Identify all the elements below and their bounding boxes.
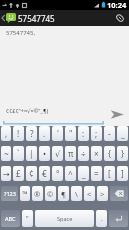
staticText: ;: [95, 128, 98, 139]
button[interactable]: _: [117, 126, 128, 141]
staticText: `: [17, 148, 20, 159]
staticText: ~: [4, 148, 9, 159]
staticText: _: [82, 168, 86, 179]
button[interactable]: Navigate up: [0, 10, 16, 26]
button[interactable]: ~: [1, 146, 11, 161]
button[interactable]: |: [26, 146, 37, 161]
staticText: \: [75, 189, 78, 199]
button[interactable]: •: [39, 146, 50, 161]
button[interactable]: Enter: [109, 210, 128, 227]
staticText: :: [82, 128, 85, 139]
staticText: <: [87, 189, 92, 199]
button[interactable]: ®: [32, 186, 43, 201]
button[interactable]: ™: [20, 186, 30, 201]
staticText: !: [17, 128, 20, 139]
button[interactable]: ": [65, 126, 76, 141]
staticText: 10:24: [107, 0, 127, 10]
staticText: ¶: [61, 189, 66, 199]
button[interactable]: →: [1, 166, 11, 181]
staticText: [: [108, 168, 111, 179]
button[interactable]: .: [96, 210, 107, 227]
staticText: ": [26, 214, 29, 223]
staticText: _: [121, 128, 125, 139]
button[interactable]: ×: [91, 146, 102, 161]
button[interactable]: {: [104, 146, 115, 161]
button[interactable]: .: [39, 126, 50, 141]
button[interactable]: €: [39, 166, 50, 181]
staticText: ÷: [81, 148, 86, 159]
button[interactable]: Backspace: [110, 186, 128, 201]
button[interactable]: ABC: [1, 210, 20, 227]
button[interactable]: ÷: [78, 146, 89, 161]
staticText: ©: [47, 189, 54, 199]
staticText: =: [94, 168, 99, 179]
staticText: .: [43, 128, 46, 139]
staticText: Space: [57, 215, 73, 222]
button[interactable]: Space: [35, 210, 94, 227]
staticText: ": [69, 128, 73, 139]
staticText: ™: [22, 189, 28, 199]
staticText: 57547745: [18, 13, 55, 24]
staticText: π: [68, 148, 74, 159]
button[interactable]: `: [13, 146, 24, 161]
button[interactable]: :: [78, 126, 89, 141]
button[interactable]: ¶: [58, 186, 69, 201]
staticText: °: [56, 168, 60, 179]
staticText: √: [55, 149, 61, 159]
button[interactable]: ¢: [26, 166, 37, 181]
button[interactable]: Send: [105, 104, 129, 124]
button[interactable]: -: [104, 126, 115, 141]
button[interactable]: ,: [1, 126, 11, 141]
button[interactable]: π: [65, 146, 76, 161]
button[interactable]: >: [97, 186, 108, 201]
button[interactable]: £: [13, 166, 24, 181]
staticText: •: [43, 148, 47, 159]
staticText: }: [121, 148, 125, 159]
button[interactable]: ]: [117, 166, 128, 181]
staticText: ×: [94, 148, 99, 159]
staticText: ,: [5, 128, 8, 139]
button[interactable]: ^: [65, 166, 76, 181]
staticText: →: [3, 169, 10, 179]
button[interactable]: =: [91, 166, 102, 181]
staticText: ?123: [4, 190, 16, 197]
staticText: £: [16, 168, 21, 179]
button[interactable]: ?: [26, 126, 37, 141]
staticText: >: [100, 189, 105, 199]
staticText: ]: [121, 168, 124, 179]
staticText: ?: [30, 128, 34, 139]
staticText: ¢¢£¢"+¤√¤©"_¶(: [6, 107, 49, 114]
button[interactable]: ©: [45, 186, 56, 201]
staticText: |: [29, 148, 34, 159]
button[interactable]: \: [71, 186, 82, 201]
button[interactable]: ': [52, 126, 63, 141]
staticText: ABC: [5, 215, 16, 222]
button[interactable]: [: [104, 166, 115, 181]
button[interactable]: }: [117, 146, 128, 161]
button[interactable]: °: [52, 166, 63, 181]
staticText: ®: [34, 189, 41, 199]
button[interactable]: !: [13, 126, 24, 141]
staticText: {: [108, 148, 112, 159]
staticText: ^: [68, 168, 73, 179]
button[interactable]: <: [84, 186, 95, 201]
button[interactable]: Attach: [111, 10, 129, 26]
button[interactable]: ?123: [1, 186, 18, 201]
staticText: ': [57, 128, 59, 139]
staticText: €: [42, 168, 47, 179]
staticText: .: [101, 214, 103, 223]
staticText: -: [108, 128, 111, 139]
staticText: 57547745,: [6, 29, 36, 37]
button[interactable]: ": [22, 210, 33, 227]
button[interactable]: ;: [91, 126, 102, 141]
button[interactable]: _: [78, 166, 89, 181]
button[interactable]: √: [52, 146, 63, 161]
staticText: ¢: [29, 168, 34, 179]
